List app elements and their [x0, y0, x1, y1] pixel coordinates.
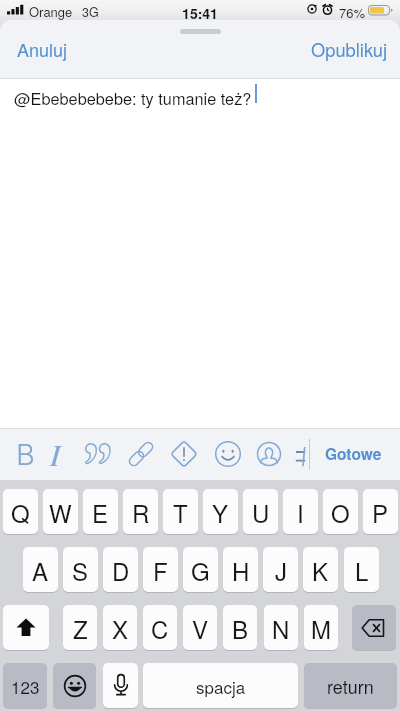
button[interactable]: Italic: [41, 428, 69, 480]
button[interactable]: Q: [3, 489, 38, 534]
staticText: B: [16, 437, 35, 472]
staticText: 3G: [82, 3, 99, 21]
staticText: I: [297, 495, 304, 529]
button[interactable]: Opublikuj: [299, 27, 400, 71]
staticText: L: [355, 553, 369, 587]
button[interactable]: D: [103, 547, 138, 592]
staticText: R: [132, 495, 150, 529]
button[interactable]: Return: [304, 663, 397, 708]
button[interactable]: H: [223, 547, 258, 592]
staticText: 15:41: [0, 3, 400, 23]
staticText: X: [112, 611, 129, 645]
staticText: E: [92, 495, 109, 529]
staticText: D: [112, 553, 130, 587]
staticText: U: [252, 495, 270, 529]
staticText: C: [151, 611, 169, 645]
button[interactable]: Link: [126, 428, 154, 480]
staticText: 76%: [339, 3, 366, 22]
button[interactable]: O: [323, 489, 358, 534]
staticText: V: [192, 611, 209, 645]
staticText: spacja: [196, 674, 246, 698]
staticText: A: [32, 553, 49, 587]
staticText: S: [72, 553, 89, 587]
button[interactable]: N: [264, 605, 298, 650]
button[interactable]: F: [143, 547, 178, 592]
staticText: I: [50, 433, 61, 475]
button[interactable]: Y: [203, 489, 238, 534]
button[interactable]: Bold: [11, 428, 39, 480]
staticText: J: [275, 553, 287, 587]
button[interactable]: T: [163, 489, 198, 534]
button[interactable]: Backspace: [352, 605, 396, 650]
staticText: W: [49, 495, 72, 529]
button[interactable]: A: [23, 547, 58, 592]
button[interactable]: G: [183, 547, 218, 592]
button[interactable]: Emoji: [214, 428, 242, 480]
staticText: F: [153, 553, 168, 587]
staticText: H: [232, 553, 250, 587]
button[interactable]: E: [83, 489, 118, 534]
staticText: Orange: [29, 2, 73, 21]
button[interactable]: P: [363, 489, 398, 534]
button[interactable]: Space: [143, 663, 298, 708]
button[interactable]: V: [183, 605, 217, 650]
button[interactable]: X: [103, 605, 137, 650]
staticText: 123: [11, 674, 40, 698]
button[interactable]: Mention: [255, 428, 283, 480]
staticText: B: [232, 611, 249, 645]
button[interactable]: Gotowe: [307, 433, 400, 475]
staticText: Q: [11, 495, 30, 529]
button[interactable]: I: [283, 489, 318, 534]
staticText: P: [372, 495, 389, 529]
button[interactable]: L: [344, 547, 379, 592]
staticText: Gotowe: [325, 443, 382, 465]
button[interactable]: Spoiler: [170, 428, 198, 480]
button[interactable]: U: [243, 489, 278, 534]
button[interactable]: Quote: [81, 428, 109, 480]
button[interactable]: C: [143, 605, 177, 650]
staticText: Opublikuj: [311, 36, 388, 62]
staticText: G: [191, 553, 210, 587]
button[interactable]: Anuluj: [0, 27, 85, 71]
staticText: N: [272, 611, 290, 645]
button[interactable]: Shift: [3, 605, 49, 650]
button[interactable]: Emoji keyboard: [53, 663, 96, 708]
button[interactable]: Strikethrough: [288, 428, 316, 480]
button[interactable]: S: [63, 547, 98, 592]
staticText: Y: [212, 495, 229, 529]
staticText: Z: [73, 611, 88, 645]
button[interactable]: Dictate: [103, 663, 138, 708]
staticText: T: [173, 495, 188, 529]
button[interactable]: J: [263, 547, 298, 592]
staticText: return: [327, 673, 374, 699]
staticText: O: [331, 495, 350, 529]
button[interactable]: Z: [63, 605, 97, 650]
staticText: @Ebebebebebe: ty tumanie też?: [14, 86, 252, 109]
staticText: K: [312, 553, 329, 587]
staticText: Anuluj: [17, 36, 68, 62]
button[interactable]: M: [304, 605, 338, 650]
button[interactable]: B: [223, 605, 257, 650]
button[interactable]: R: [123, 489, 158, 534]
button[interactable]: W: [43, 489, 78, 534]
button[interactable]: Numbers: [3, 663, 47, 708]
staticText: M: [311, 611, 331, 645]
button[interactable]: K: [303, 547, 338, 592]
